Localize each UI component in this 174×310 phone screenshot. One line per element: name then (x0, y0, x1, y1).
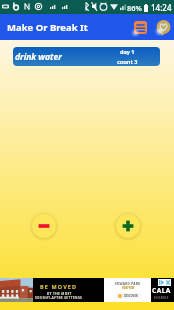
button[interactable]: drink water (13, 47, 160, 66)
staticText: day 1 (120, 48, 135, 55)
staticText: EDWARD PARK (115, 282, 141, 286)
staticText: RENFREW (122, 286, 135, 290)
staticText: BY THE MOST (47, 292, 72, 296)
staticText: Make Or Break It (7, 21, 88, 34)
staticText: HOMES (154, 295, 169, 300)
button[interactable]: Favourites (154, 18, 172, 36)
button[interactable]: Decrease count (29, 211, 59, 241)
staticText: count 3 (117, 58, 138, 65)
staticText: drink water (15, 51, 62, 63)
staticText: SOUGHT-AFTER SETTINGS (35, 296, 83, 300)
staticText: 86% (127, 3, 142, 13)
button[interactable]: BE MOVED (0, 278, 174, 302)
staticText: CALA (152, 286, 171, 295)
staticText: DISCOVER (124, 294, 138, 298)
staticText: 14:24 (151, 2, 172, 13)
staticText: BE MOVED (40, 283, 78, 290)
button[interactable]: Archive (131, 18, 149, 36)
button[interactable]: Increase count (113, 211, 143, 241)
